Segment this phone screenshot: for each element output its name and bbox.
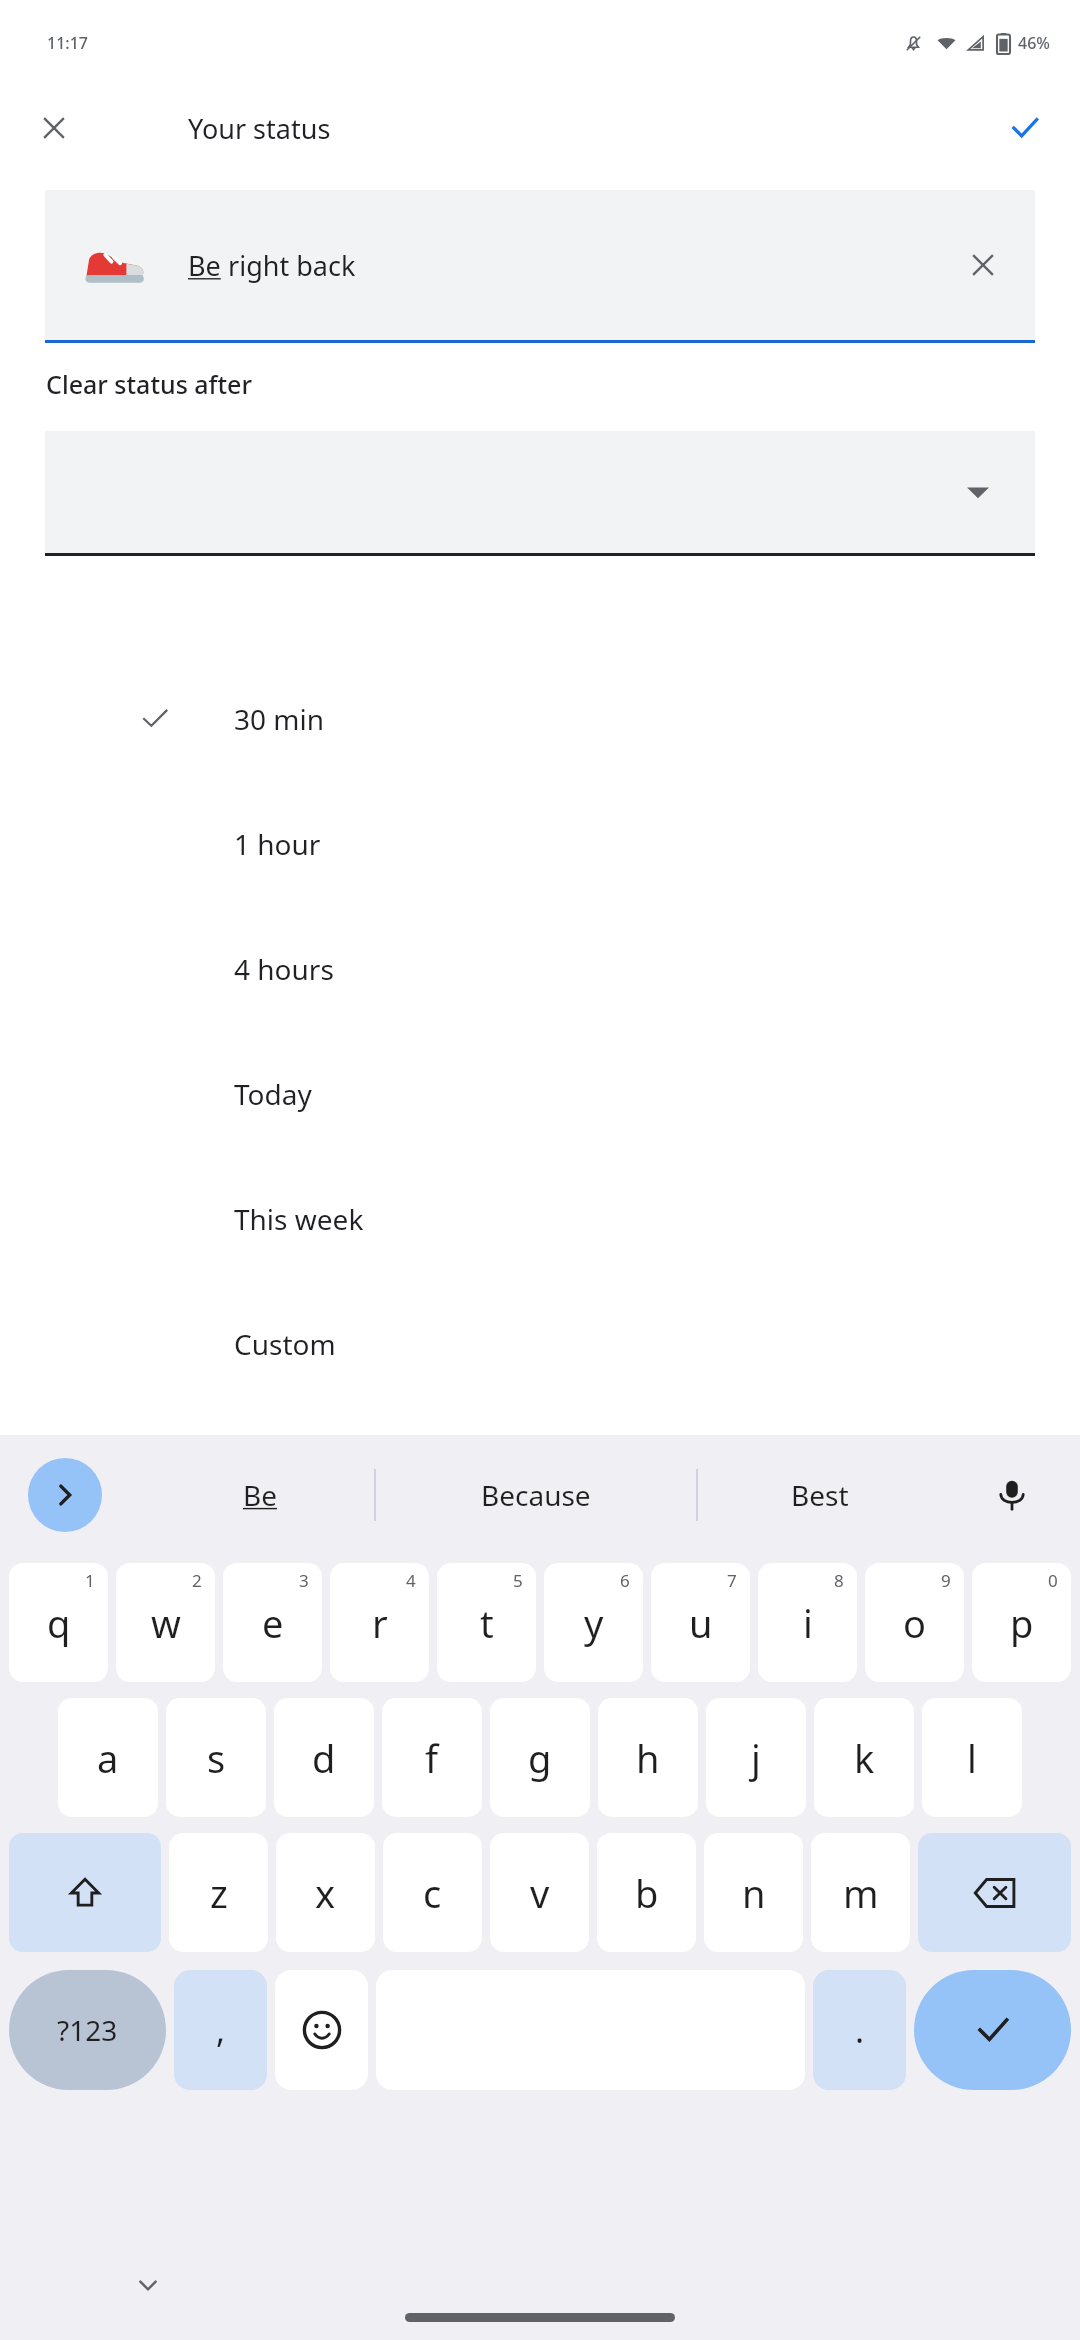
staticText: k [854,1732,875,1784]
button[interactable]: p [972,1563,1071,1682]
staticText: g [528,1732,552,1784]
staticText: d [312,1732,336,1784]
button[interactable]: 4 hours [42,906,915,1031]
staticText: j [751,1732,761,1784]
staticText: w [151,1597,181,1649]
staticText: 5 [513,1569,523,1592]
staticText: 7 [727,1569,737,1592]
button[interactable] [45,431,1035,553]
staticText: m [843,1867,879,1919]
staticText: 2 [192,1569,202,1592]
staticText: l [967,1732,977,1784]
staticText: 30 min [234,700,325,738]
button[interactable]: d [274,1698,374,1817]
button[interactable]: k [814,1698,914,1817]
staticText: . [855,2007,865,2053]
button[interactable]: Backspace [918,1833,1071,1952]
button[interactable]: 30 min [42,656,915,781]
button[interactable]: More suggestions [28,1458,102,1532]
button[interactable]: w [116,1563,215,1682]
staticText: Clear status after [46,367,253,401]
button[interactable]: y [544,1563,643,1682]
button[interactable]: m [811,1833,910,1952]
staticText: Be [243,1476,277,1514]
staticText: 6 [620,1569,630,1592]
staticText: 46% [1018,32,1050,54]
staticText: t [480,1597,494,1649]
staticText: 11:17 [47,32,88,54]
button[interactable]: , [174,1970,267,2090]
button[interactable]: l [922,1698,1022,1817]
button[interactable]: g [490,1698,590,1817]
button[interactable]: r [330,1563,429,1682]
staticText: Best [791,1476,849,1514]
staticText: h [636,1732,660,1784]
button[interactable]: Done [996,99,1054,157]
button[interactable]: Emoji [275,1970,368,2090]
button[interactable]: Clear status text [955,237,1011,293]
button[interactable]: Because [390,1435,682,1555]
button[interactable]: v [490,1833,589,1952]
staticText: n [742,1867,766,1919]
button[interactable]: ?123 [9,1970,166,2090]
button[interactable]: h [598,1698,698,1817]
staticText: e [262,1597,284,1649]
staticText: z [210,1867,228,1919]
button[interactable]: . [813,1970,906,2090]
button[interactable]: q [9,1563,108,1682]
button[interactable]: e [223,1563,322,1682]
staticText: 1 [85,1569,95,1592]
staticText: 4 hours [234,950,334,988]
button[interactable]: Custom [42,1281,915,1406]
button[interactable]: Be [150,1435,370,1555]
button[interactable]: z [169,1833,268,1952]
staticText: 8 [834,1569,844,1592]
button[interactable]: This week [42,1156,915,1281]
button[interactable]: b [597,1833,696,1952]
button[interactable]: u [651,1563,750,1682]
button[interactable]: Close [26,100,82,156]
button[interactable]: Shift [9,1833,161,1952]
staticText: Be [188,247,221,284]
button[interactable]: o [865,1563,964,1682]
staticText: 1 hour [234,825,321,863]
button[interactable]: Enter [914,1970,1071,2090]
staticText: 3 [299,1569,309,1592]
button[interactable]: a [58,1698,158,1817]
staticText: , [216,2007,226,2053]
staticText: i [803,1597,813,1649]
button[interactable]: x [276,1833,375,1952]
staticText: b [635,1867,659,1919]
button[interactable]: Hide keyboard [120,2257,176,2313]
staticText: o [903,1597,926,1649]
button[interactable]: 1 hour [42,781,915,906]
button[interactable]: s [166,1698,266,1817]
staticText: u [689,1597,713,1649]
staticText: 0 [1048,1569,1058,1592]
staticText: Your status [188,110,331,147]
button[interactable]: j [706,1698,806,1817]
staticText: f [425,1732,439,1784]
staticText: q [47,1597,71,1649]
staticText: y [584,1597,604,1649]
button[interactable]: t [437,1563,536,1682]
staticText: 9 [941,1569,951,1592]
staticText: c [423,1867,442,1919]
staticText: This week [234,1200,364,1238]
staticText: Today [234,1075,312,1113]
button[interactable]: Today [42,1031,915,1156]
button[interactable]: i [758,1563,857,1682]
staticText: right back [221,247,356,284]
staticText: x [315,1867,336,1919]
button[interactable]: Be [45,190,1035,340]
staticText: a [97,1732,119,1784]
button[interactable]: Voice input [974,1457,1050,1533]
staticText: v [530,1867,550,1919]
staticText: s [207,1732,226,1784]
button[interactable]: Best [710,1435,930,1555]
button[interactable]: n [704,1833,803,1952]
button[interactable]: c [383,1833,482,1952]
button[interactable]: f [382,1698,482,1817]
staticText: Because [481,1476,591,1514]
